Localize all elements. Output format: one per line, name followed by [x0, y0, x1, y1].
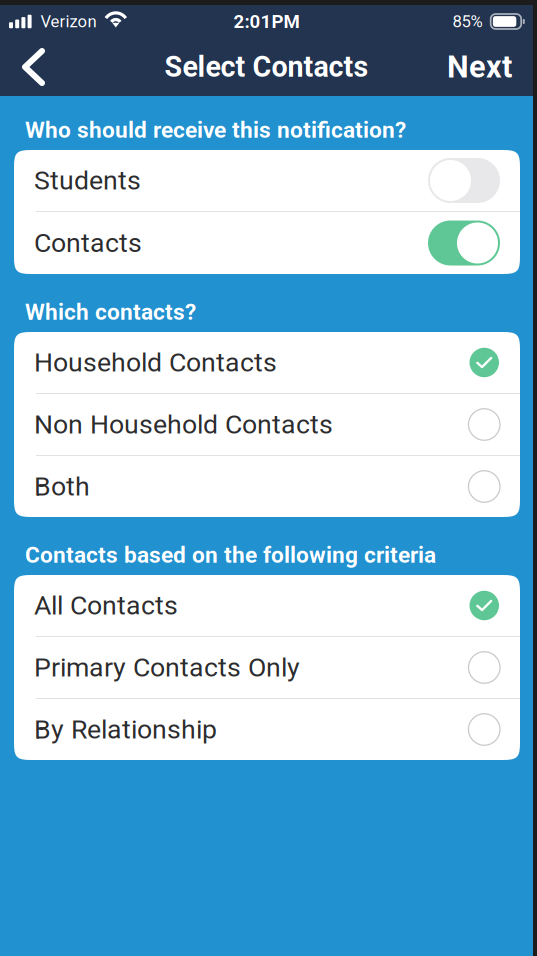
- button[interactable]: Non Household Contacts: [14, 394, 520, 455]
- staticText: Verizon: [33, 12, 105, 31]
- staticText: By Relationship: [34, 714, 217, 745]
- button[interactable]: Household Contacts: [14, 332, 520, 393]
- staticText: Primary Contacts Only: [34, 652, 300, 683]
- button[interactable]: Both: [14, 456, 520, 517]
- staticText: Contacts based on the following criteria: [25, 542, 436, 568]
- staticText: Household Contacts: [34, 347, 277, 378]
- staticText: Who should receive this notification?: [25, 117, 406, 143]
- button[interactable]: Contacts: [14, 212, 520, 274]
- staticText: Select Contacts: [164, 50, 368, 84]
- staticText: Next: [447, 49, 512, 85]
- staticText: All Contacts: [34, 590, 178, 621]
- button[interactable]: Students: [14, 150, 520, 211]
- staticText: Both: [34, 471, 90, 502]
- staticText: Non Household Contacts: [34, 409, 333, 440]
- staticText: 2:01PM: [233, 11, 299, 32]
- staticText: Which contacts?: [25, 299, 196, 325]
- button[interactable]: All Contacts: [14, 575, 520, 636]
- staticText: 85%: [452, 12, 490, 31]
- button[interactable]: Next: [437, 38, 522, 96]
- button[interactable]: By Relationship: [14, 699, 520, 760]
- button[interactable]: Back: [11, 38, 56, 96]
- staticText: Students: [34, 165, 141, 196]
- staticText: Contacts: [34, 227, 142, 259]
- button[interactable]: Primary Contacts Only: [14, 637, 520, 698]
